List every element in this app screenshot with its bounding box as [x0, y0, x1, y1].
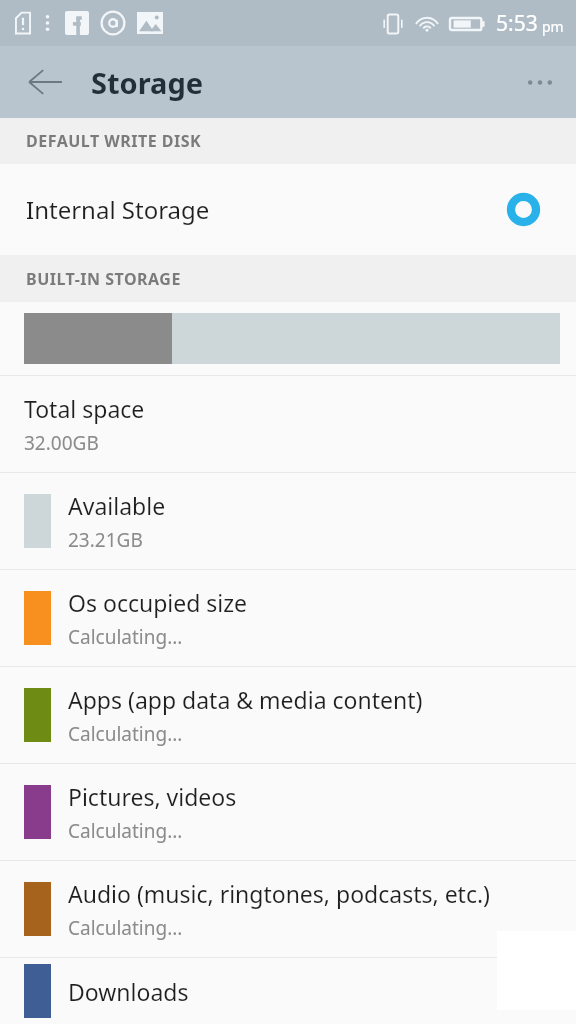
button[interactable]: Downloads	[0, 958, 576, 1024]
staticText: Os occupied size	[68, 587, 248, 618]
staticText: Internal Storage	[26, 193, 210, 226]
staticText: Audio (music, ringtones, podcasts, etc.)	[68, 878, 491, 909]
staticText: 32.00GB	[24, 430, 99, 456]
button[interactable]: Os occupied size	[0, 570, 576, 666]
staticText: DEFAULT WRITE DISK	[26, 130, 202, 152]
button[interactable]: Audio (music, ringtones, podcasts, etc.)	[0, 861, 576, 957]
staticText: Available	[68, 490, 166, 521]
staticText: pm	[542, 17, 564, 36]
staticText: 23.21GB	[68, 527, 143, 553]
staticText: Calculating...	[68, 721, 183, 747]
staticText: Calculating...	[68, 915, 183, 941]
staticText: Storage	[91, 63, 204, 102]
staticText: Total space	[24, 393, 145, 424]
staticText: BUILT-IN STORAGE	[26, 268, 181, 290]
staticText: Calculating...	[68, 818, 183, 844]
button[interactable]: Available	[0, 473, 576, 569]
staticText: Pictures, videos	[68, 781, 237, 812]
button[interactable]: More options	[514, 56, 566, 108]
staticText: 5:53	[496, 9, 538, 38]
button[interactable]: Pictures, videos	[0, 764, 576, 860]
staticText: Apps (app data & media content)	[68, 684, 423, 715]
staticText: Downloads	[68, 976, 189, 1007]
staticText: Calculating...	[68, 624, 183, 650]
button[interactable]: Internal Storage	[0, 164, 576, 255]
button[interactable]: Back	[22, 59, 68, 105]
button[interactable]: Apps (app data & media content)	[0, 667, 576, 763]
button[interactable]: Total space	[0, 376, 576, 472]
